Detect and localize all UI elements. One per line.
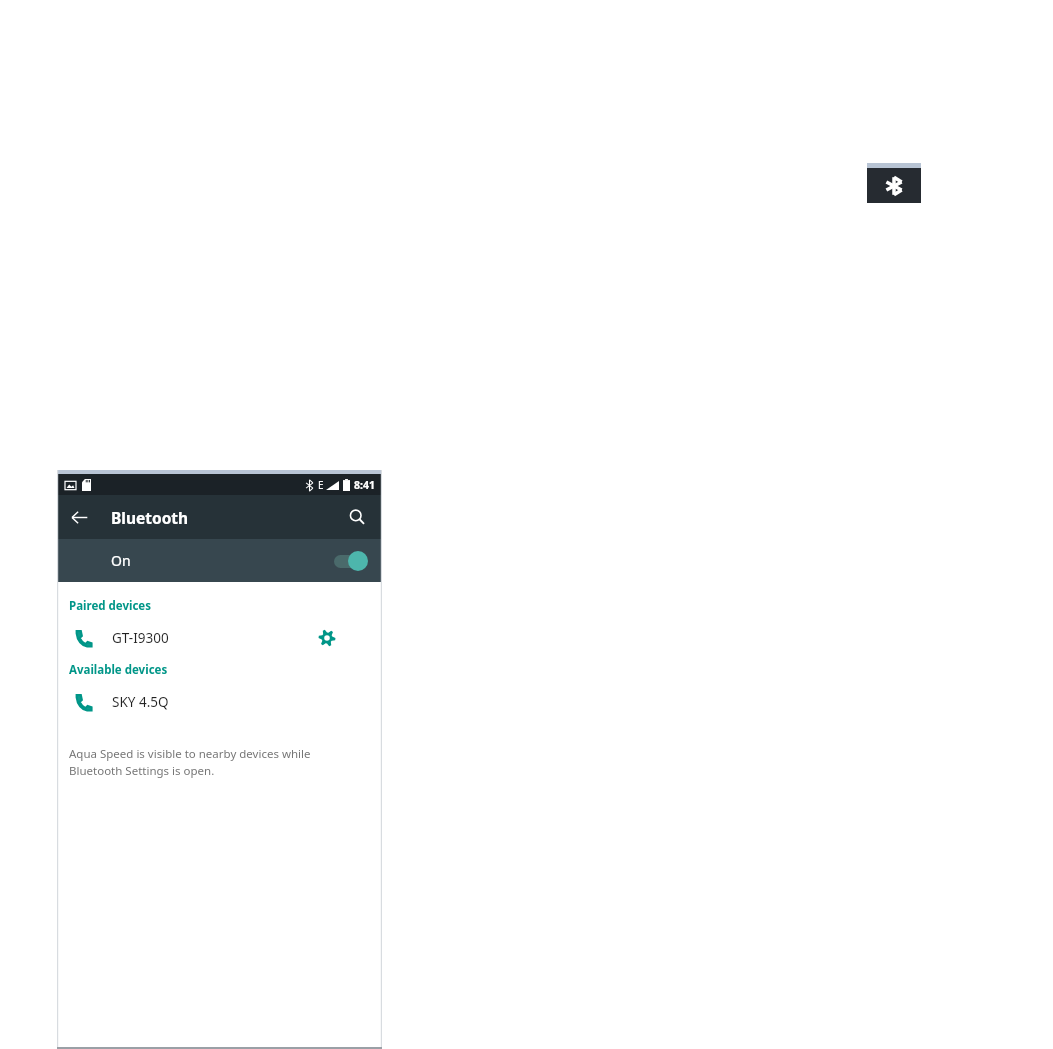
button[interactable]: SKY 4.5Q [57,680,382,724]
staticText: E [318,478,324,492]
button[interactable]: Search [338,498,376,536]
staticText: SKY 4.5Q [112,693,169,711]
staticText: GT-I9300 [112,629,169,647]
staticText: Available devices [69,662,168,678]
staticText: Aqua Speed is visible to nearby devices … [69,746,311,778]
button[interactable]: Bluetooth [867,163,921,203]
staticText: On [111,551,131,570]
button[interactable]: Device settings [312,623,342,653]
button[interactable]: GT-I9300 [57,616,382,660]
button[interactable]: On [57,539,382,582]
staticText: Bluetooth [111,507,189,528]
staticText: Paired devices [69,598,151,614]
staticText: 8:41 [354,478,375,492]
button[interactable]: Back [61,499,97,535]
